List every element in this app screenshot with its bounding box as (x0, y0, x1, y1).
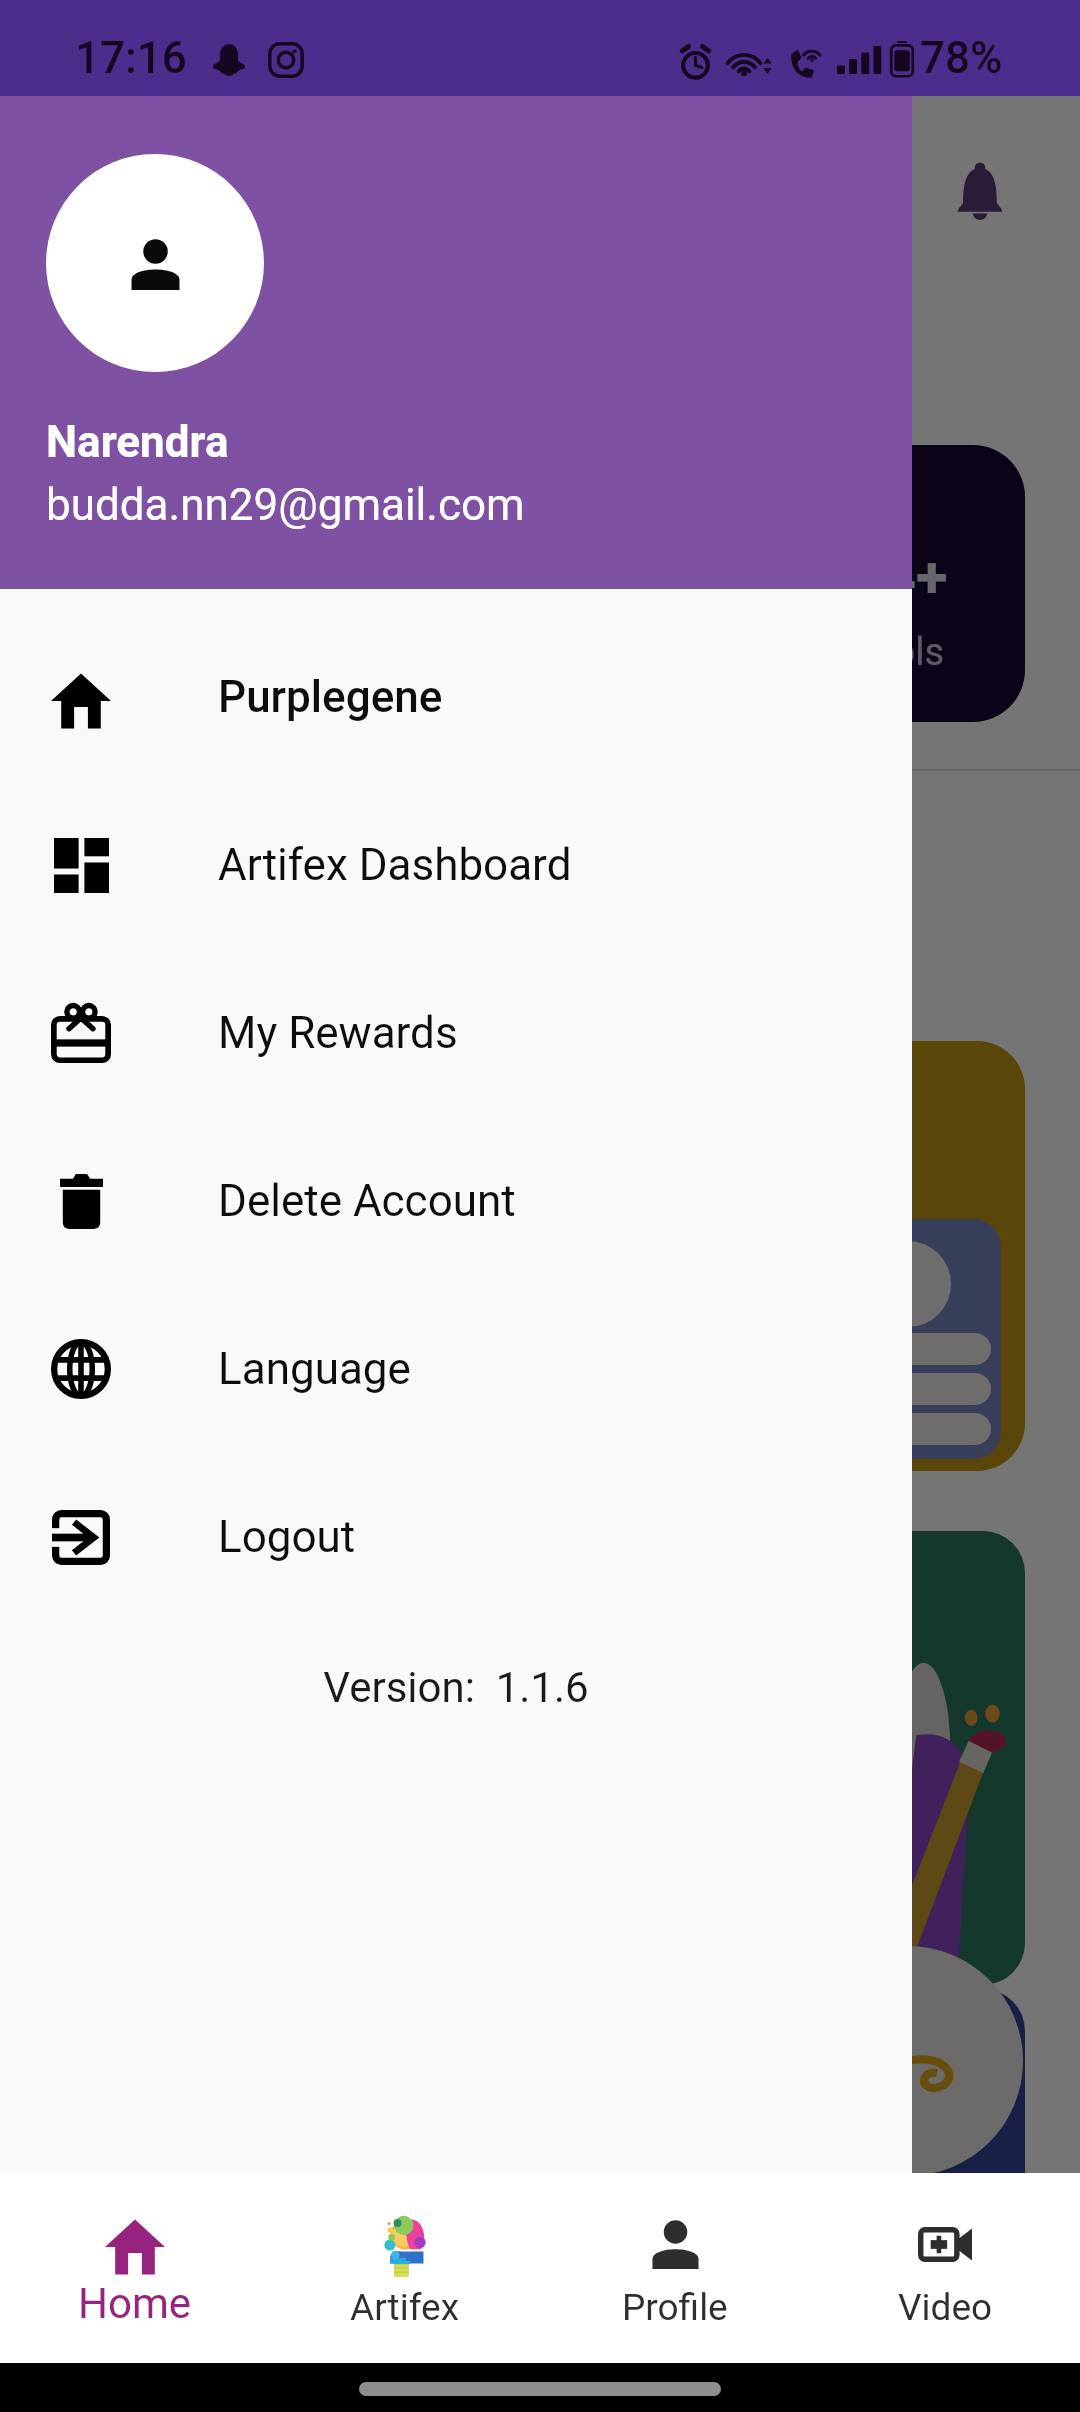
staticText: Artifex (350, 2286, 460, 2329)
staticText: budda.nn29@gmail.com (46, 479, 525, 531)
button[interactable]: Artifex Dashboard (0, 781, 912, 949)
button[interactable]: Purplegene (0, 613, 912, 781)
staticText: Unlock 24+ (655, 543, 948, 611)
staticText: 17:16 (75, 32, 187, 84)
staticText: Home (78, 2279, 192, 2328)
button[interactable]: Home (0, 2173, 270, 2363)
button[interactable]: Profile (540, 2173, 810, 2363)
staticText: My Rewards (218, 1007, 458, 1059)
staticText: Narendra (46, 416, 229, 468)
staticText: Language (218, 1343, 411, 1395)
staticText: Artifex Dashboard (218, 839, 572, 891)
staticText: Logout (218, 1511, 356, 1563)
button[interactable]: Logout (0, 1453, 912, 1621)
staticText: premium AI tools (655, 630, 945, 675)
staticText: 78% (920, 32, 1003, 84)
staticText: Video (898, 2286, 993, 2329)
button[interactable]: Language (0, 1285, 912, 1453)
button[interactable]: Video (810, 2173, 1080, 2363)
staticText: Delete Account (218, 1175, 516, 1227)
button[interactable]: Artifex (270, 2173, 540, 2363)
staticText: Purplegene (218, 671, 443, 723)
staticText: Profile (622, 2286, 728, 2329)
button[interactable]: Delete Account (0, 1117, 912, 1285)
button[interactable]: Notifications (930, 140, 1030, 240)
button[interactable]: My Rewards (0, 949, 912, 1117)
staticText: Version: 1.1.6 (0, 1663, 912, 1712)
